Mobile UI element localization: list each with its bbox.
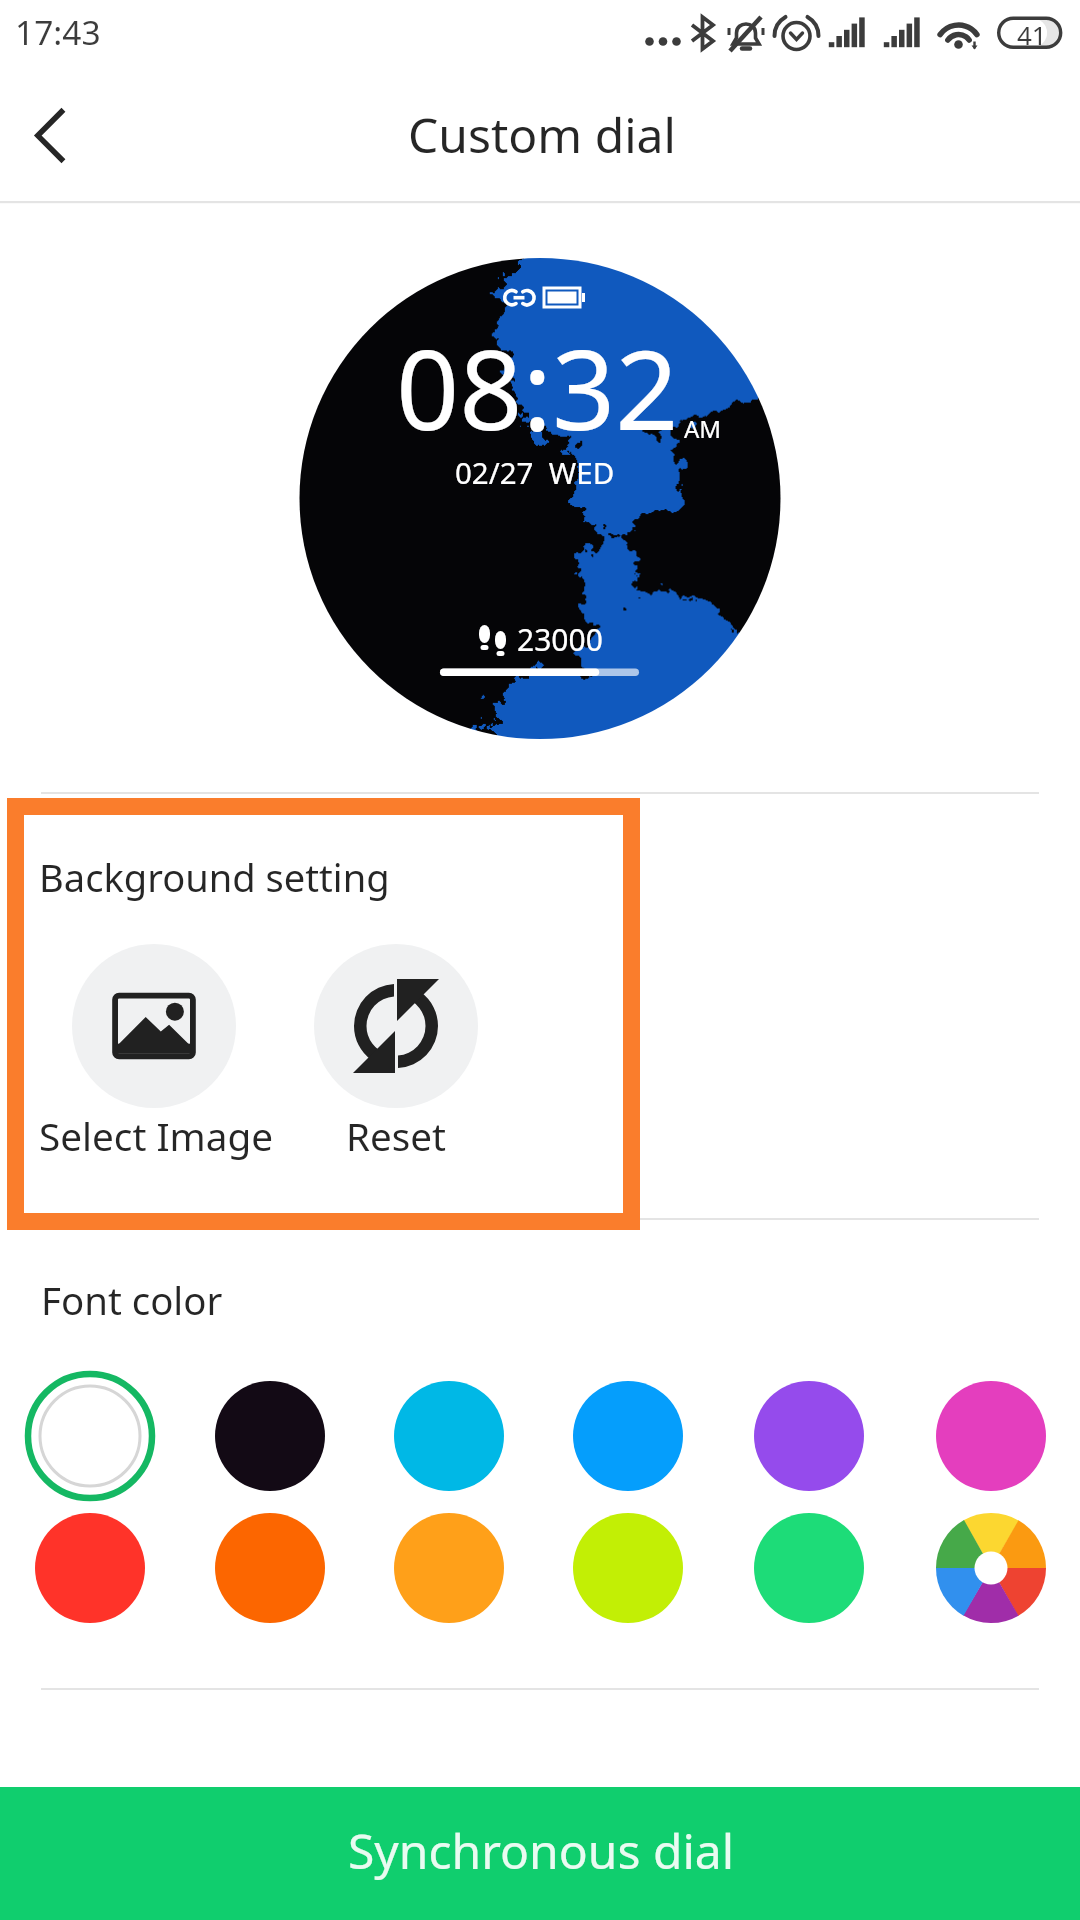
button[interactable]: Select Image — [72, 944, 236, 1108]
staticText: AM — [684, 412, 722, 445]
staticText: 02/27 WED — [455, 452, 615, 492]
button[interactable]: Color swatch — [28, 1374, 152, 1498]
button[interactable]: Color swatch — [929, 1506, 1053, 1630]
button[interactable]: Color swatch — [566, 1506, 690, 1630]
button[interactable]: Synchronous dial — [0, 1787, 1080, 1920]
button[interactable]: Color swatch — [747, 1506, 871, 1630]
staticText: Reset — [346, 1110, 446, 1163]
button[interactable]: Color swatch — [387, 1506, 511, 1630]
button[interactable]: Color swatch — [387, 1374, 511, 1498]
staticText: Background setting — [39, 851, 390, 903]
staticText: 17:43 — [15, 9, 101, 55]
staticText: Synchronous dial — [348, 1818, 735, 1883]
button[interactable]: Back — [0, 62, 110, 202]
button[interactable]: Color swatch — [566, 1374, 690, 1498]
staticText: 23000 — [517, 619, 603, 660]
button[interactable]: Color swatch — [28, 1506, 152, 1630]
staticText: Font color — [41, 1274, 223, 1326]
button[interactable]: Reset — [314, 944, 478, 1108]
button[interactable]: Color swatch — [929, 1374, 1053, 1498]
button[interactable]: Color swatch — [747, 1374, 871, 1498]
staticText: Select Image — [39, 1110, 274, 1163]
staticText: 08:32 — [396, 312, 679, 463]
staticText: Custom dial — [408, 102, 676, 167]
button[interactable]: Color swatch — [208, 1374, 332, 1498]
button[interactable]: Color swatch — [208, 1506, 332, 1630]
staticText: 41 — [1017, 17, 1047, 52]
